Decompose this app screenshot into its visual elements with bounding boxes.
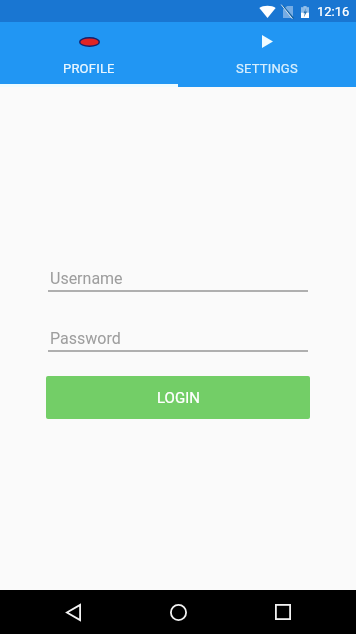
staticText: SETTINGS — [236, 61, 298, 76]
button[interactable]: Back — [41, 590, 105, 634]
button[interactable]: PROFILE — [0, 22, 178, 87]
staticText: LOGIN — [157, 389, 200, 407]
staticText: Username — [50, 269, 123, 288]
button[interactable]: Password — [48, 328, 308, 352]
button[interactable]: Recent apps — [251, 590, 315, 634]
staticText: Password — [50, 329, 121, 348]
button[interactable]: LOGIN — [46, 376, 310, 419]
button[interactable]: SETTINGS — [178, 22, 356, 87]
staticText: PROFILE — [63, 61, 115, 76]
staticText: 12:16 — [317, 4, 350, 19]
button[interactable]: Home — [146, 590, 210, 634]
button[interactable]: Username — [48, 268, 308, 292]
